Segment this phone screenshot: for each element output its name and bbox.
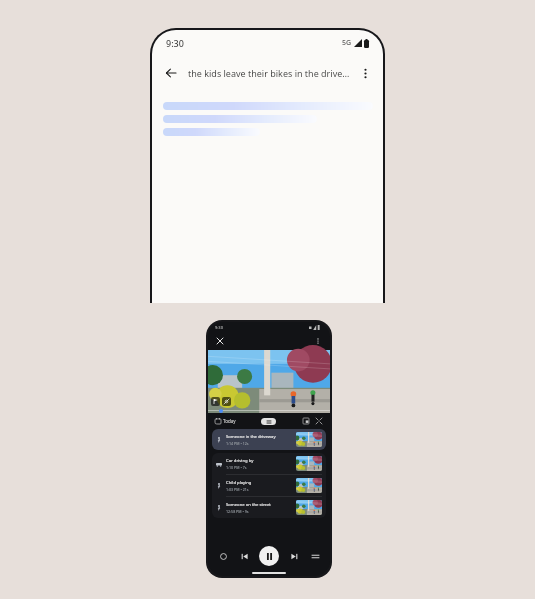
staticText: the kids leave their bikes in the drivew… — [188, 67, 351, 79]
button[interactable]: Home — [216, 549, 230, 563]
staticText: Car driving by — [226, 458, 254, 464]
button[interactable]: Fullscreen — [314, 416, 324, 426]
button[interactable]: Today — [214, 417, 237, 425]
button[interactable]: More options — [312, 335, 324, 347]
button[interactable]: Filter — [261, 418, 276, 425]
button[interactable]: Someone in the driveway — [212, 429, 326, 450]
staticText: 5G — [342, 38, 352, 48]
button[interactable]: Someone on the street — [212, 497, 326, 518]
button[interactable]: Previous — [237, 549, 251, 563]
button[interactable]: Child playing — [212, 475, 326, 496]
staticText: Today — [223, 418, 236, 424]
button[interactable]: Back — [160, 62, 182, 84]
button[interactable]: Menu — [308, 549, 322, 563]
button[interactable]: Next — [287, 549, 301, 563]
staticText: 12:58 PM • 9s — [226, 509, 249, 514]
staticText: 1:10 PM • 7s — [226, 465, 247, 470]
staticText: 1:14 PM • 12s — [226, 441, 249, 446]
button[interactable]: Pause — [259, 546, 279, 566]
button[interactable]: Hide — [222, 397, 231, 406]
button[interactable]: Picture in picture — [301, 416, 311, 426]
button[interactable]: Car driving by — [212, 453, 326, 474]
button[interactable]: Close — [214, 335, 226, 347]
staticText: 1:03 PM • 21s — [226, 487, 249, 492]
staticText: Someone on the street — [226, 502, 271, 508]
staticText: Someone in the driveway — [226, 434, 276, 440]
staticText: 9:30 — [215, 325, 223, 330]
button[interactable]: More options — [355, 63, 375, 83]
button[interactable]: Flag — [211, 397, 220, 406]
staticText: 9:30 — [166, 37, 184, 49]
staticText: Child playing — [226, 480, 252, 486]
